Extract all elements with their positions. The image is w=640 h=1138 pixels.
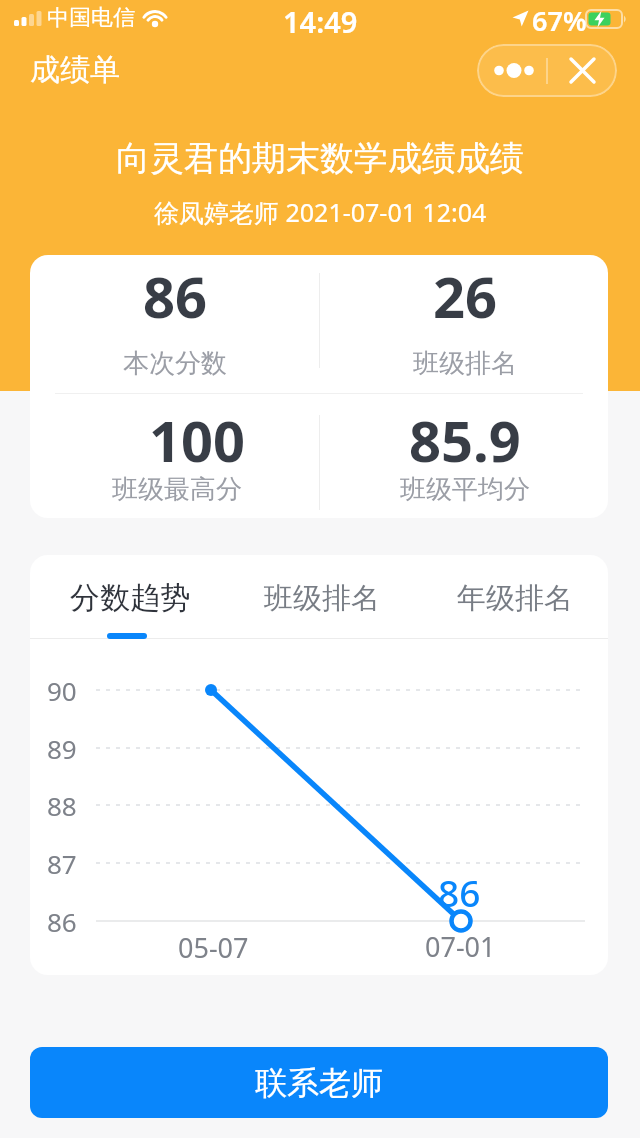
staticText: 89 — [47, 731, 77, 766]
staticText: 班级排名 — [413, 347, 517, 380]
staticText: 86 — [47, 904, 77, 939]
button[interactable] — [477, 44, 546, 97]
staticText: 87 — [47, 846, 77, 881]
staticText: 年级排名 — [457, 580, 573, 617]
staticText: 85.9 — [409, 402, 521, 472]
button[interactable]: 班级排名 — [242, 568, 402, 628]
staticText: 88 — [47, 788, 77, 823]
button[interactable]: 分数趋势 — [50, 568, 210, 628]
staticText: 100 — [149, 402, 246, 472]
button[interactable] — [548, 44, 617, 97]
button[interactable]: 年级排名 — [435, 568, 595, 628]
staticText: 成绩单 — [30, 51, 120, 89]
staticText: 本次分数 — [123, 347, 227, 380]
staticText: 向灵君的期末数学成绩成绩 — [116, 137, 524, 180]
staticText: 徐凤婷老师 2021-07-01 12:04 — [154, 195, 487, 229]
button[interactable]: 联系老师 — [30, 1047, 608, 1118]
staticText: 班级平均分 — [400, 473, 530, 506]
staticText: 67% — [532, 2, 587, 34]
staticText: 05-07 — [178, 929, 249, 965]
staticText: 班级最高分 — [112, 473, 242, 506]
staticText: 14:49 — [283, 2, 358, 34]
staticText: 联系老师 — [255, 1063, 383, 1103]
staticText: 26 — [433, 258, 498, 328]
staticText: 中国电信 — [47, 4, 135, 32]
staticText: 07-01 — [425, 928, 496, 964]
staticText: 86 — [143, 258, 208, 328]
staticText: 班级排名 — [264, 580, 380, 617]
staticText: 90 — [47, 673, 77, 708]
staticText: 分数趋势 — [70, 579, 190, 617]
staticText: 86 — [438, 867, 481, 911]
